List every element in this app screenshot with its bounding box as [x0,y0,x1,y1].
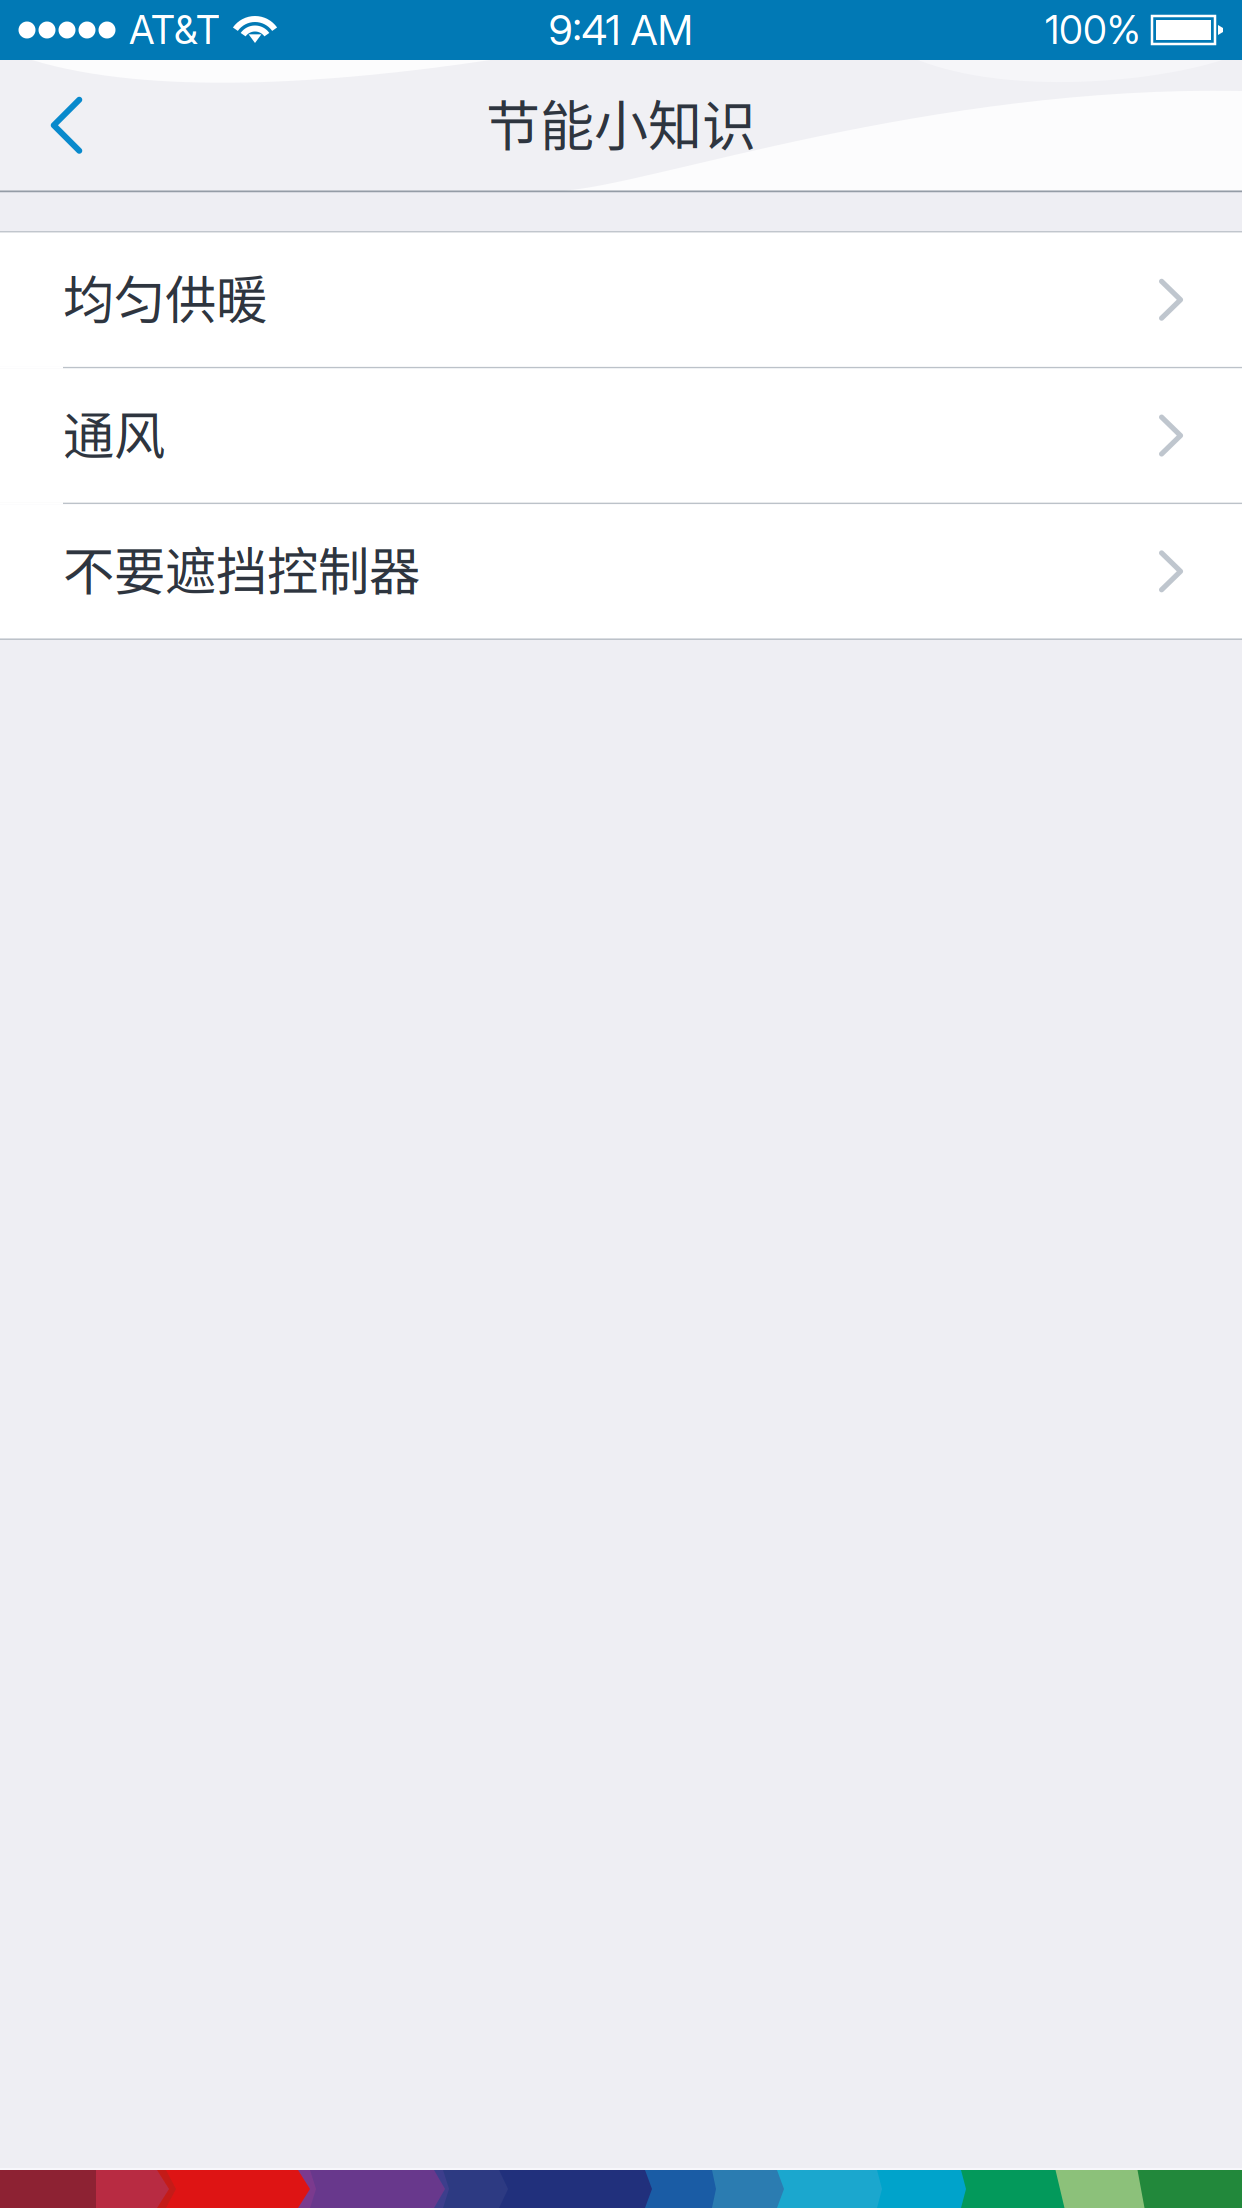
staticText: 均匀供暖 [63,259,267,333]
staticText: AT&T [129,7,220,53]
staticText: 节能小知识 [486,84,756,162]
button[interactable]: 不要遮挡控制器 [0,504,1242,638]
staticText: 9:41 AM [548,5,693,55]
button[interactable]: 均匀供暖 [0,233,1242,367]
staticText: 不要遮挡控制器 [63,531,420,605]
staticText: 通风 [63,395,165,469]
button[interactable]: 通风 [0,368,1242,503]
button[interactable]: Back [0,60,133,190]
staticText: 100% [1045,7,1141,53]
